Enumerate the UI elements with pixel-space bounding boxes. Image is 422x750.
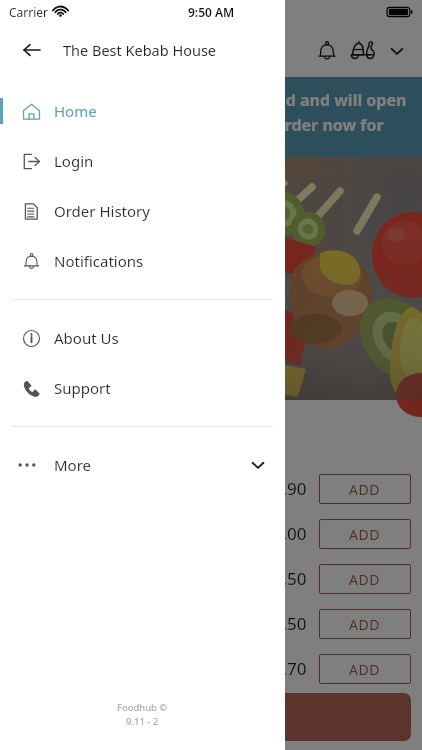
staticText: Carrier: [9, 4, 49, 20]
button[interactable]: Notifications: [310, 34, 344, 68]
staticText: The Best Kebab House: [63, 40, 217, 60]
staticText: £6.00: [263, 522, 307, 545]
staticText: The Best Kebab House: [54, 41, 213, 61]
button[interactable]: ADD: [319, 474, 411, 504]
staticText: Foodhub ©: [117, 701, 168, 714]
staticText: ADD: [349, 615, 381, 634]
button[interactable]: Back: [14, 34, 48, 68]
staticText: £7.50: [263, 612, 307, 635]
staticText: Login: [54, 151, 94, 171]
button[interactable]: Delivery options: [346, 34, 380, 68]
staticText: £5.90: [263, 477, 307, 500]
staticText: The shop is closed and will open: [152, 89, 407, 111]
button[interactable]: ADD: [319, 564, 411, 594]
button[interactable]: About Us: [0, 313, 285, 363]
staticText: More: [54, 455, 92, 475]
button[interactable]: ADD: [319, 654, 411, 684]
staticText: ADD: [349, 525, 381, 544]
staticText: ADD: [349, 660, 381, 679]
button[interactable]: Support: [0, 363, 285, 413]
button[interactable]: ADD: [319, 519, 411, 549]
staticText: ADD: [349, 480, 381, 499]
button[interactable]: ADD: [319, 609, 411, 639]
button[interactable]: Back: [15, 33, 49, 67]
staticText: Home: [54, 101, 97, 121]
button[interactable]: Expand: [382, 36, 412, 66]
staticText: £6.50: [263, 567, 307, 590]
staticText: About Us: [54, 328, 119, 348]
button[interactable]: Home: [0, 86, 285, 136]
staticText: 9:50 AM: [188, 4, 235, 20]
staticText: £8.70: [263, 657, 307, 680]
staticText: Notifications: [54, 251, 144, 271]
staticText: Support: [54, 378, 111, 398]
button[interactable]: More: [0, 440, 285, 490]
button[interactable]: Order History: [0, 186, 285, 236]
staticText: ADD: [349, 570, 381, 589]
staticText: at 11:00. You can order now for: [138, 114, 384, 136]
button[interactable]: View basket: [18, 693, 411, 741]
staticText: 9.11 - 2: [126, 715, 159, 728]
button[interactable]: Notifications: [0, 236, 285, 286]
button[interactable]: Login: [0, 136, 285, 186]
button[interactable]: Expand more: [241, 448, 275, 482]
staticText: Order History: [54, 201, 150, 221]
